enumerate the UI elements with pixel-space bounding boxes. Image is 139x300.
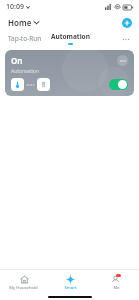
- button[interactable]: Automation options: [117, 55, 128, 66]
- button[interactable]: Automation: [50, 32, 91, 45]
- staticText: Me: [113, 285, 120, 291]
- staticText: Automation: [11, 68, 39, 75]
- button[interactable]: More options: [120, 33, 132, 45]
- button[interactable]: Smart: [47, 270, 93, 294]
- button[interactable]: Home: [7, 15, 40, 30]
- staticText: 10:09: [6, 2, 24, 12]
- staticText: Automation: [51, 32, 90, 41]
- button[interactable]: Tap-to-Run: [7, 32, 43, 45]
- staticText: Smart: [64, 285, 77, 291]
- button[interactable]: On: [5, 50, 134, 96]
- button[interactable]: My Household: [0, 270, 47, 294]
- button[interactable]: Me: [93, 270, 139, 294]
- staticText: My Household: [9, 285, 38, 291]
- staticText: Home: [8, 17, 32, 28]
- button[interactable]: Toggle automation: [109, 79, 128, 90]
- button[interactable]: Add: [122, 18, 132, 28]
- button[interactable]: Device action: [37, 78, 50, 91]
- button[interactable]: Temperature condition: [11, 78, 24, 91]
- staticText: Tap-to-Run: [8, 34, 42, 43]
- staticText: On: [11, 55, 23, 66]
